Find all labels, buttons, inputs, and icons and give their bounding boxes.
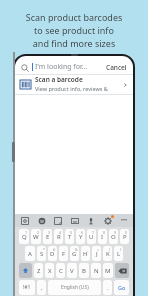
staticText: + [97,247,100,252]
button[interactable]: 2 [31,229,41,244]
button[interactable]: C [56,263,65,278]
staticText: 1 [25,230,28,235]
staticText: G [72,250,77,258]
button[interactable]: _ [81,246,90,261]
button[interactable]: Handwriting [19,215,30,226]
button[interactable]: * [37,246,46,261]
staticText: 3 [48,230,51,235]
staticText: and find more sizes [0,37,148,49]
staticText: 6 [81,230,84,235]
staticText: Go [118,284,126,291]
staticText: S [40,250,44,258]
staticText: X [48,267,52,275]
button[interactable]: Search [19,62,30,73]
button[interactable]: 4 [54,229,63,244]
staticText: 7 [92,230,95,235]
staticText: C [59,267,63,275]
staticText: U [89,233,94,241]
staticText: M [105,267,111,275]
staticText: W [33,233,39,241]
staticText: K [106,250,110,258]
button[interactable]: 5 [65,229,74,244]
staticText: T [68,233,72,241]
button[interactable]: Settings [102,215,113,226]
button[interactable]: 6 [76,229,85,244]
staticText: - [65,247,67,252]
staticText: 8 [103,230,106,235]
button[interactable]: - [59,246,68,261]
staticText: to see product info [0,24,148,36]
button[interactable]: Scan a barcode [15,75,133,94]
staticText: B [82,267,86,275]
button[interactable]: B [79,263,89,278]
button[interactable]: Stickers [52,215,63,226]
staticText: D [50,250,55,258]
staticText: I [101,233,104,241]
staticText: * [43,247,45,252]
staticText: L [117,250,121,258]
button[interactable]: ) [114,246,123,261]
button[interactable]: , [37,280,46,295]
staticText: ( [109,247,111,252]
staticText: Y [79,233,83,241]
staticText: F [62,250,66,258]
staticText: 5 [70,230,73,235]
button[interactable]: Cancel [104,61,129,74]
button[interactable]: Voice input [85,215,96,226]
button[interactable]: 1 [19,229,29,244]
staticText: Scan a barcode [35,75,83,84]
button[interactable]: M [103,263,113,278]
button[interactable]: ( [103,246,112,261]
button[interactable]: English (US) [48,280,101,295]
staticText: Cancel [106,63,127,72]
button[interactable]: # [48,246,57,261]
button[interactable]: N [91,263,101,278]
staticText: I'm looking for... [35,62,88,72]
staticText: & [75,247,78,252]
staticText: A [28,250,32,258]
staticText: 9 [114,230,117,235]
staticText: E [46,233,50,241]
staticText: 0 [125,230,128,235]
staticText: . [107,284,109,292]
staticText: # [53,247,56,252]
staticText: _ [87,247,89,252]
staticText: Scan product barcodes [0,11,148,23]
staticText: Z [37,267,41,275]
staticText: V [70,267,74,275]
button[interactable]: + [92,246,101,261]
staticText: 4 [59,230,62,235]
button[interactable]: 7 [87,229,96,244]
button[interactable]: 9 [109,229,118,244]
staticText: 2 [37,230,40,235]
button[interactable]: A [25,246,35,261]
staticText: O [111,233,116,241]
button[interactable]: 3 [43,229,52,244]
button[interactable]: 8 [98,229,107,244]
button[interactable]: Go [114,280,129,295]
staticText: P [123,233,127,241]
button[interactable]: & [70,246,79,261]
button[interactable]: Backspace [115,263,129,278]
staticText: View product info, reviews & more [35,85,122,94]
staticText: , [41,284,43,292]
staticText: J [96,250,98,258]
staticText: ) [120,247,122,252]
button[interactable]: Clipboard [69,215,80,226]
staticText: !#1 [23,284,31,291]
button[interactable]: Emoji [36,215,47,226]
button[interactable]: 0 [120,229,129,244]
staticText: H [83,250,88,258]
button[interactable]: Shift [19,263,32,278]
button[interactable]: X [45,263,54,278]
button[interactable]: V [67,263,77,278]
staticText: English (US) [61,284,89,291]
staticText: N [94,267,99,275]
staticText: R [57,233,61,241]
button[interactable]: . [103,280,112,295]
button[interactable]: More options [118,215,129,226]
button[interactable]: Z [34,263,43,278]
button[interactable]: !#1 [19,280,35,295]
staticText: Q [22,233,27,241]
